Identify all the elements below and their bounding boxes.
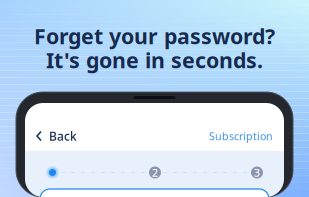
staticText: Forget your password? <box>34 22 275 50</box>
button[interactable]: Subscription <box>209 126 273 146</box>
staticText: Back <box>49 128 77 144</box>
button[interactable]: Back <box>36 125 77 147</box>
staticText: Subscription <box>209 129 273 143</box>
staticText: 3 <box>254 165 260 180</box>
staticText: 2 <box>152 165 158 180</box>
staticText: It's gone in seconds. <box>46 46 263 74</box>
